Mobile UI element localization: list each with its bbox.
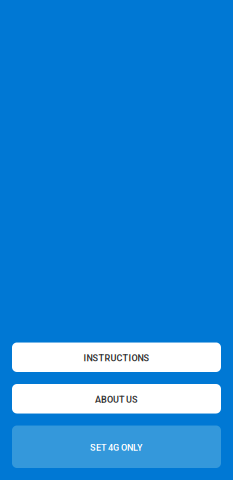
staticText: INSTRUCTIONS [83, 353, 149, 363]
button[interactable]: INSTRUCTIONS [12, 342, 221, 372]
button[interactable]: ABOUT US [12, 384, 221, 413]
staticText: ABOUT US [95, 394, 138, 405]
button[interactable]: SET 4G ONLY [12, 425, 221, 468]
staticText: SET 4G ONLY [90, 442, 143, 453]
